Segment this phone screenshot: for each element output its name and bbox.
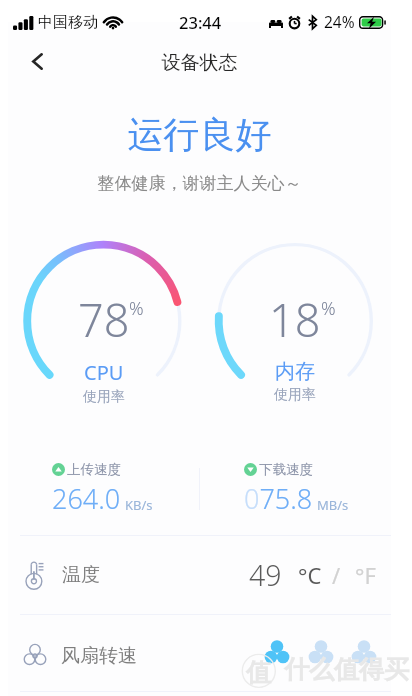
staticText: 使用率 <box>83 388 125 406</box>
staticText: 内存 <box>275 359 315 384</box>
staticText: 运行良好 <box>8 112 391 157</box>
staticText: 整体健康，谢谢主人关心～ <box>8 173 391 194</box>
staticText: 264.0 <box>52 480 121 517</box>
button[interactable]: Back <box>21 45 54 78</box>
button[interactable]: 上传速度 <box>52 461 199 517</box>
staticText: / <box>332 560 341 590</box>
staticText: 什么值得买 <box>284 654 409 685</box>
staticText: 上传速度 <box>67 461 121 478</box>
button[interactable]: 78 <box>8 244 199 414</box>
staticText: °C <box>298 560 322 590</box>
staticText: 78 <box>78 289 130 350</box>
staticText: 值 <box>246 657 271 688</box>
button[interactable]: 18 <box>199 244 391 414</box>
staticText: 设备状态 <box>8 51 391 75</box>
staticText: 使用率 <box>274 386 316 404</box>
staticText: CPU <box>84 359 124 386</box>
staticText: 中国移动 <box>38 13 98 32</box>
staticText: 23:44 <box>179 11 222 33</box>
staticText: 075.8 <box>244 480 313 517</box>
staticText: 下载速度 <box>259 461 313 478</box>
staticText: 18 <box>269 289 321 350</box>
staticText: 24% <box>324 11 355 32</box>
staticText: 49 <box>249 556 282 595</box>
staticText: 温度 <box>62 563 100 587</box>
button[interactable]: 温度 <box>8 536 391 614</box>
button[interactable]: 风扇转速 <box>8 615 391 696</box>
staticText: MB/s <box>317 496 349 514</box>
staticText: 风扇转速 <box>61 644 137 668</box>
button[interactable]: 下载速度 <box>244 461 391 517</box>
staticText: % <box>129 296 144 321</box>
staticText: °F <box>355 560 376 590</box>
staticText: KB/s <box>125 496 153 514</box>
staticText: % <box>321 296 336 321</box>
